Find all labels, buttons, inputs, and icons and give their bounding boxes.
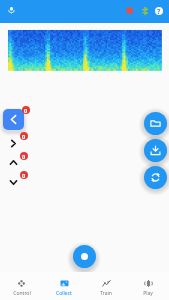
button[interactable]: Next bbox=[3, 133, 24, 154]
staticText: 0 bbox=[22, 133, 26, 140]
staticText: ? bbox=[157, 7, 161, 15]
staticText: Train bbox=[100, 290, 112, 297]
button[interactable]: Refresh bbox=[144, 166, 167, 189]
button[interactable]: Play bbox=[127, 272, 169, 297]
staticText: Collect bbox=[56, 290, 72, 297]
staticText: 0 bbox=[22, 172, 26, 179]
button[interactable]: Download bbox=[144, 139, 167, 162]
button[interactable]: Up bbox=[3, 152, 24, 173]
button[interactable]: Previous bbox=[3, 109, 24, 130]
staticText: 0 bbox=[24, 107, 28, 114]
button[interactable]: Collect bbox=[43, 272, 85, 297]
staticText: Play bbox=[143, 290, 153, 297]
button[interactable]: Control bbox=[0, 272, 43, 297]
button[interactable]: Train bbox=[85, 272, 127, 297]
button[interactable]: Record bbox=[73, 245, 96, 268]
button[interactable]: Down bbox=[3, 172, 24, 193]
button[interactable]: Help bbox=[155, 7, 163, 15]
staticText: Control bbox=[13, 290, 31, 297]
staticText: 0 bbox=[22, 153, 26, 160]
button[interactable]: Open folder bbox=[144, 112, 167, 135]
